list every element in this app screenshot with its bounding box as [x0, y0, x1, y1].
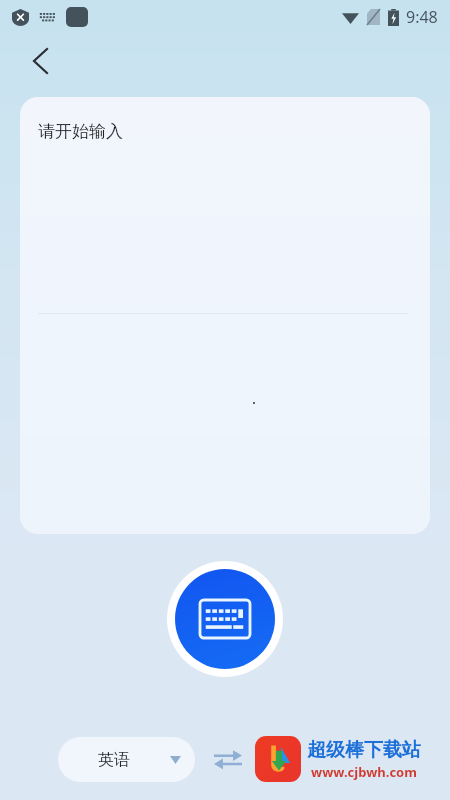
button[interactable]: Back — [18, 39, 62, 83]
staticText: www.cjbwh.com — [311, 763, 417, 781]
staticText: 超级棒下载站 — [307, 738, 421, 762]
staticText: 英语 — [98, 750, 130, 770]
button[interactable]: Swap languages — [209, 740, 247, 778]
button[interactable]: 请开始输入 — [20, 97, 430, 534]
button[interactable]: Keyboard input — [167, 561, 283, 677]
button[interactable]: 英语 — [58, 737, 195, 782]
staticText: 9:48 — [406, 6, 438, 28]
staticText: 请开始输入 — [38, 121, 123, 142]
